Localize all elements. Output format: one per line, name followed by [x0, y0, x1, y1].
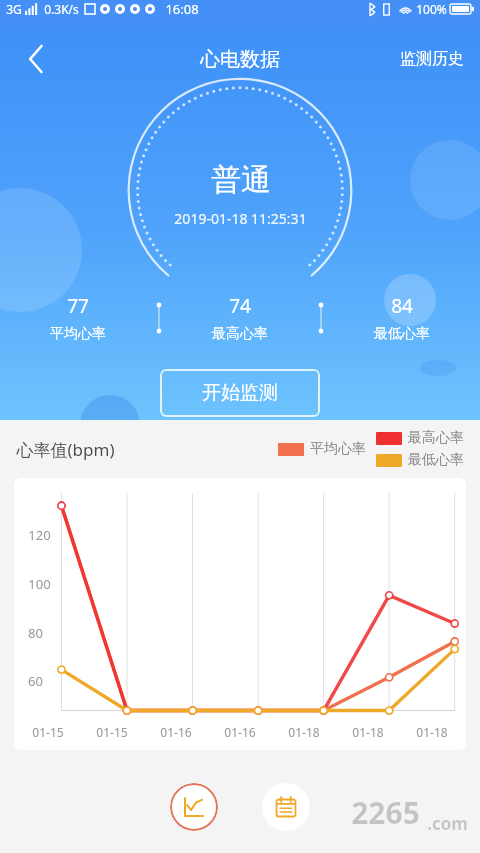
- staticText: 120: [28, 526, 51, 544]
- staticText: 01-16: [160, 724, 192, 740]
- staticText: 最低心率: [408, 451, 464, 469]
- staticText: 最高心率: [212, 325, 268, 343]
- staticText: 01-18: [288, 724, 320, 740]
- staticText: 最低心率: [374, 325, 430, 343]
- button[interactable]: Calendar: [262, 783, 310, 831]
- staticText: 100: [28, 575, 51, 593]
- staticText: 2019-01-18 11:25:31: [174, 209, 307, 228]
- staticText: 01-18: [416, 724, 448, 740]
- staticText: 80: [28, 624, 43, 642]
- button[interactable]: 开始监测: [160, 369, 320, 417]
- staticText: 16:08: [165, 0, 199, 18]
- staticText: 77: [67, 293, 89, 319]
- staticText: 01-16: [224, 724, 256, 740]
- staticText: 心电数据: [200, 47, 280, 72]
- staticText: 74: [229, 293, 251, 319]
- staticText: 监测历史: [400, 49, 464, 69]
- staticText: 0.3K/s: [44, 1, 79, 17]
- button[interactable]: Back: [14, 36, 60, 82]
- staticText: 最高心率: [408, 429, 464, 447]
- staticText: 普通: [211, 161, 271, 199]
- staticText: 60: [28, 672, 43, 690]
- button[interactable]: 监测历史: [394, 41, 470, 77]
- staticText: 平均心率: [50, 325, 106, 343]
- staticText: 3G: [6, 1, 22, 17]
- staticText: 平均心率: [310, 440, 366, 458]
- staticText: 开始监测: [202, 381, 278, 405]
- staticText: .com: [427, 812, 468, 835]
- button[interactable]: Chart: [170, 783, 218, 831]
- staticText: 100%: [416, 1, 447, 17]
- staticText: 01-15: [96, 724, 128, 740]
- staticText: 心率值(bpm): [16, 438, 115, 461]
- staticText: 01-18: [352, 724, 384, 740]
- staticText: 84: [391, 293, 413, 319]
- staticText: 01-15: [32, 724, 64, 740]
- staticText: 2265: [351, 792, 420, 833]
